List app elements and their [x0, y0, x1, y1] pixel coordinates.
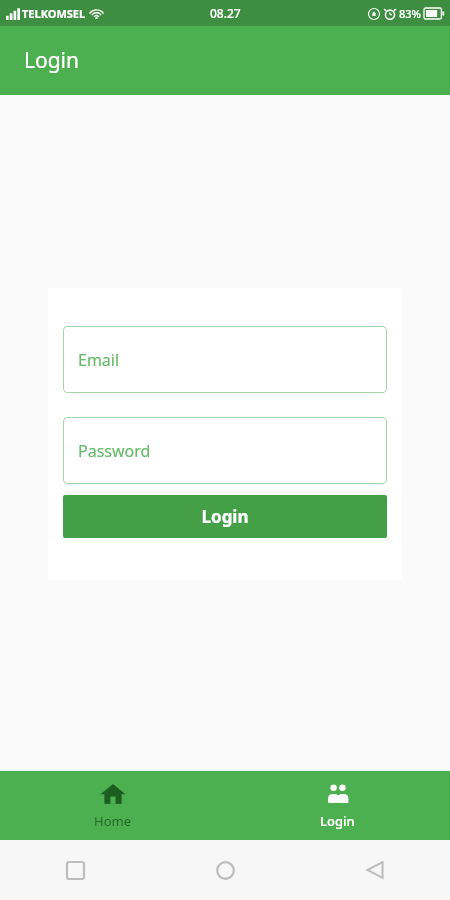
button[interactable]: Home — [0, 771, 225, 840]
staticText: Login — [320, 812, 355, 830]
other: Login — [325, 781, 351, 807]
button[interactable]: Email — [63, 326, 387, 393]
button[interactable]: Login — [225, 771, 450, 840]
button[interactable]: Password — [63, 417, 387, 484]
staticText: 08.27 — [210, 5, 241, 21]
staticText: Login — [201, 505, 249, 528]
staticText: Login — [24, 46, 80, 75]
other: Home — [216, 861, 235, 880]
button[interactable]: Login — [63, 495, 387, 538]
staticText: TELKOMSEL — [22, 6, 86, 21]
other: Back — [366, 861, 384, 879]
staticText: Email — [78, 349, 120, 371]
other: Home — [100, 781, 126, 807]
staticText: Password — [78, 440, 151, 462]
other: Recent apps — [67, 862, 84, 879]
staticText: Home — [94, 812, 131, 830]
staticText: 83% — [399, 6, 421, 21]
